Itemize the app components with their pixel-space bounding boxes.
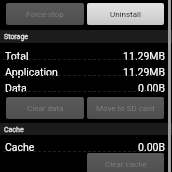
staticText: Total bbox=[5, 50, 29, 62]
staticText: Clear data bbox=[27, 104, 64, 113]
staticText: Move to SD card bbox=[96, 104, 155, 113]
staticText: Storage bbox=[4, 33, 29, 41]
staticText: Force stop bbox=[26, 10, 64, 19]
staticText: Cache bbox=[5, 141, 35, 153]
staticText: Application bbox=[5, 66, 58, 78]
staticText: 0.00B bbox=[138, 82, 166, 94]
staticText: Clear cache bbox=[105, 160, 147, 169]
button[interactable]: Move to SD card bbox=[87, 97, 164, 119]
button[interactable]: Force stop bbox=[6, 3, 84, 25]
staticText: Cache bbox=[4, 126, 24, 134]
button[interactable]: Clear cache bbox=[87, 153, 164, 172]
staticText: 11.29MB bbox=[123, 50, 166, 62]
button[interactable]: Clear data bbox=[6, 97, 84, 119]
staticText: Data bbox=[5, 82, 27, 94]
staticText: 11.29MB bbox=[123, 66, 166, 78]
staticText: 0.00B bbox=[138, 141, 166, 153]
staticText: Uninstall bbox=[110, 10, 141, 19]
button[interactable]: Uninstall bbox=[87, 3, 164, 25]
